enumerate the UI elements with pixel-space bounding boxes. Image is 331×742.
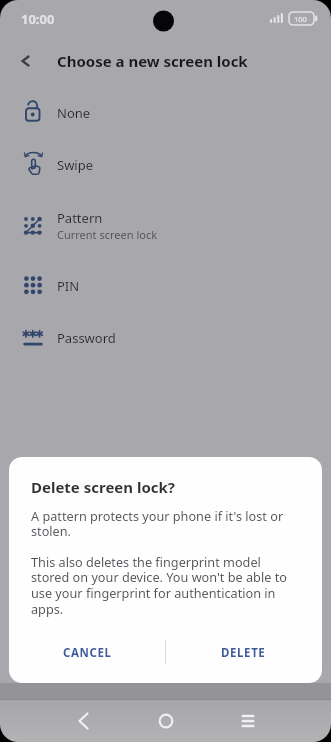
button[interactable]: None (0, 87, 331, 139)
staticText: DELETE (221, 645, 266, 661)
button[interactable]: DELETE (165, 639, 322, 667)
button[interactable]: PIN (0, 260, 331, 312)
staticText: Swipe (57, 156, 94, 174)
staticText: None (57, 104, 91, 122)
button[interactable] (125, 700, 207, 742)
button[interactable]: Pattern (0, 191, 331, 260)
staticText: 100 (294, 14, 307, 24)
staticText: Password (57, 329, 116, 347)
button[interactable] (10, 46, 42, 76)
button[interactable]: CANCEL (9, 639, 165, 667)
button[interactable] (42, 700, 125, 742)
button[interactable] (207, 700, 289, 742)
button[interactable]: Swipe (0, 139, 331, 191)
staticText: This also deletes the fingerprint model … (31, 553, 287, 618)
staticText: 10:00 (21, 10, 55, 28)
staticText: Current screen lock (57, 227, 158, 242)
staticText: PIN (57, 277, 80, 295)
staticText: A pattern protects your phone if it's lo… (31, 507, 284, 540)
button[interactable]: Password (0, 312, 331, 364)
staticText: CANCEL (63, 645, 112, 661)
staticText: Pattern (57, 209, 103, 227)
staticText: Choose a new screen lock (57, 51, 248, 71)
staticText: Delete screen lock? (31, 477, 176, 497)
